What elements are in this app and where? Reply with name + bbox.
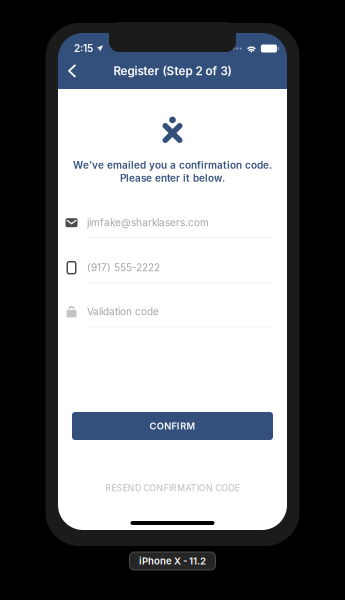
button[interactable]: RESEND CONFIRMATION CODE — [58, 480, 287, 496]
staticText: Please enter it below. — [120, 172, 225, 184]
staticText: RESEND CONFIRMATION CODE — [105, 483, 240, 493]
button[interactable]: (917) 555-2222 — [58, 253, 287, 283]
button[interactable]: Validation code — [58, 297, 287, 327]
button[interactable]: CONFIRM — [72, 412, 273, 440]
staticText: Register (Step 2 of 3) — [113, 64, 231, 78]
button[interactable]: jimfake@sharklasers.com — [58, 208, 287, 238]
staticText: Validation code — [87, 306, 159, 318]
staticText: 2:15 — [74, 42, 93, 54]
button[interactable]: Back — [60, 59, 84, 83]
staticText: iPhone X - 11.2 — [139, 555, 206, 567]
staticText: We've emailed you a confirmation code. — [73, 159, 272, 171]
staticText: CONFIRM — [149, 420, 196, 432]
staticText: (917) 555-2222 — [87, 262, 160, 274]
staticText: jimfake@sharklasers.com — [87, 217, 209, 229]
